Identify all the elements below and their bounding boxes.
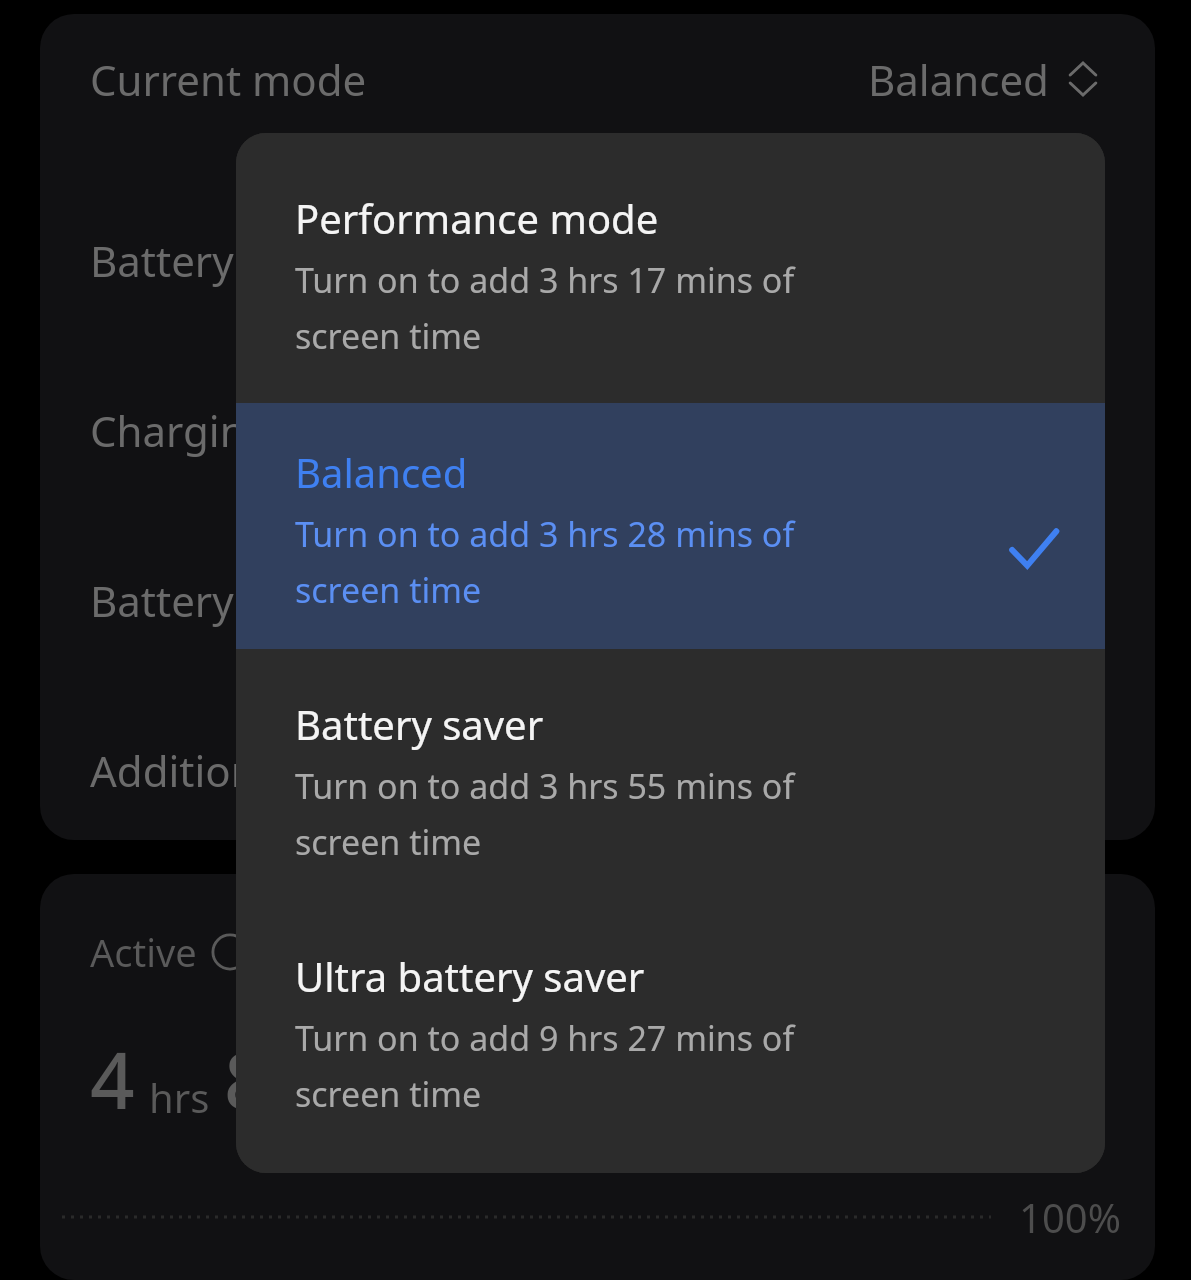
button[interactable]: Performance mode xyxy=(236,133,1105,403)
button[interactable]: Charging settings xyxy=(40,370,1155,490)
other: Change mode xyxy=(1063,59,1103,99)
other: Help xyxy=(211,933,249,971)
staticText: Balanced xyxy=(868,51,1049,108)
button[interactable]: Battery saver xyxy=(236,649,1105,901)
staticText: 100% xyxy=(1019,1190,1121,1244)
staticText: Battery percentage xyxy=(90,232,469,289)
button[interactable]: Battery percentage xyxy=(40,200,1155,320)
staticText: Turn on to add 3 hrs 17 mins of screen t… xyxy=(295,257,795,359)
staticText: Turn on to add 9 hrs 27 mins of screen t… xyxy=(295,1015,795,1117)
button[interactable]: Additional settings xyxy=(40,710,1155,830)
staticText: Ultra battery saver xyxy=(295,949,645,1003)
staticText: Balanced xyxy=(295,445,468,499)
button[interactable]: Balanced xyxy=(236,403,1105,649)
staticText: hrs xyxy=(149,1070,210,1124)
staticText: Performance mode xyxy=(295,191,659,245)
staticText: Battery usage xyxy=(90,572,364,629)
staticText: Turn on to add 3 hrs 55 mins of screen t… xyxy=(295,763,795,865)
button[interactable]: Battery usage xyxy=(40,540,1155,660)
button[interactable]: Current mode xyxy=(40,14,1155,144)
staticText: Charging settings xyxy=(90,402,440,459)
button[interactable]: Ultra battery saver xyxy=(236,901,1105,1173)
staticText: Current mode xyxy=(90,51,367,108)
staticText: Battery saver xyxy=(295,697,544,751)
staticText: Turn on to add 3 hrs 28 mins of screen t… xyxy=(295,511,795,613)
staticText: 8 xyxy=(224,1026,269,1132)
staticText: 4 xyxy=(90,1026,135,1132)
staticText: Additional settings xyxy=(90,742,459,799)
staticText: Active xyxy=(90,926,197,978)
